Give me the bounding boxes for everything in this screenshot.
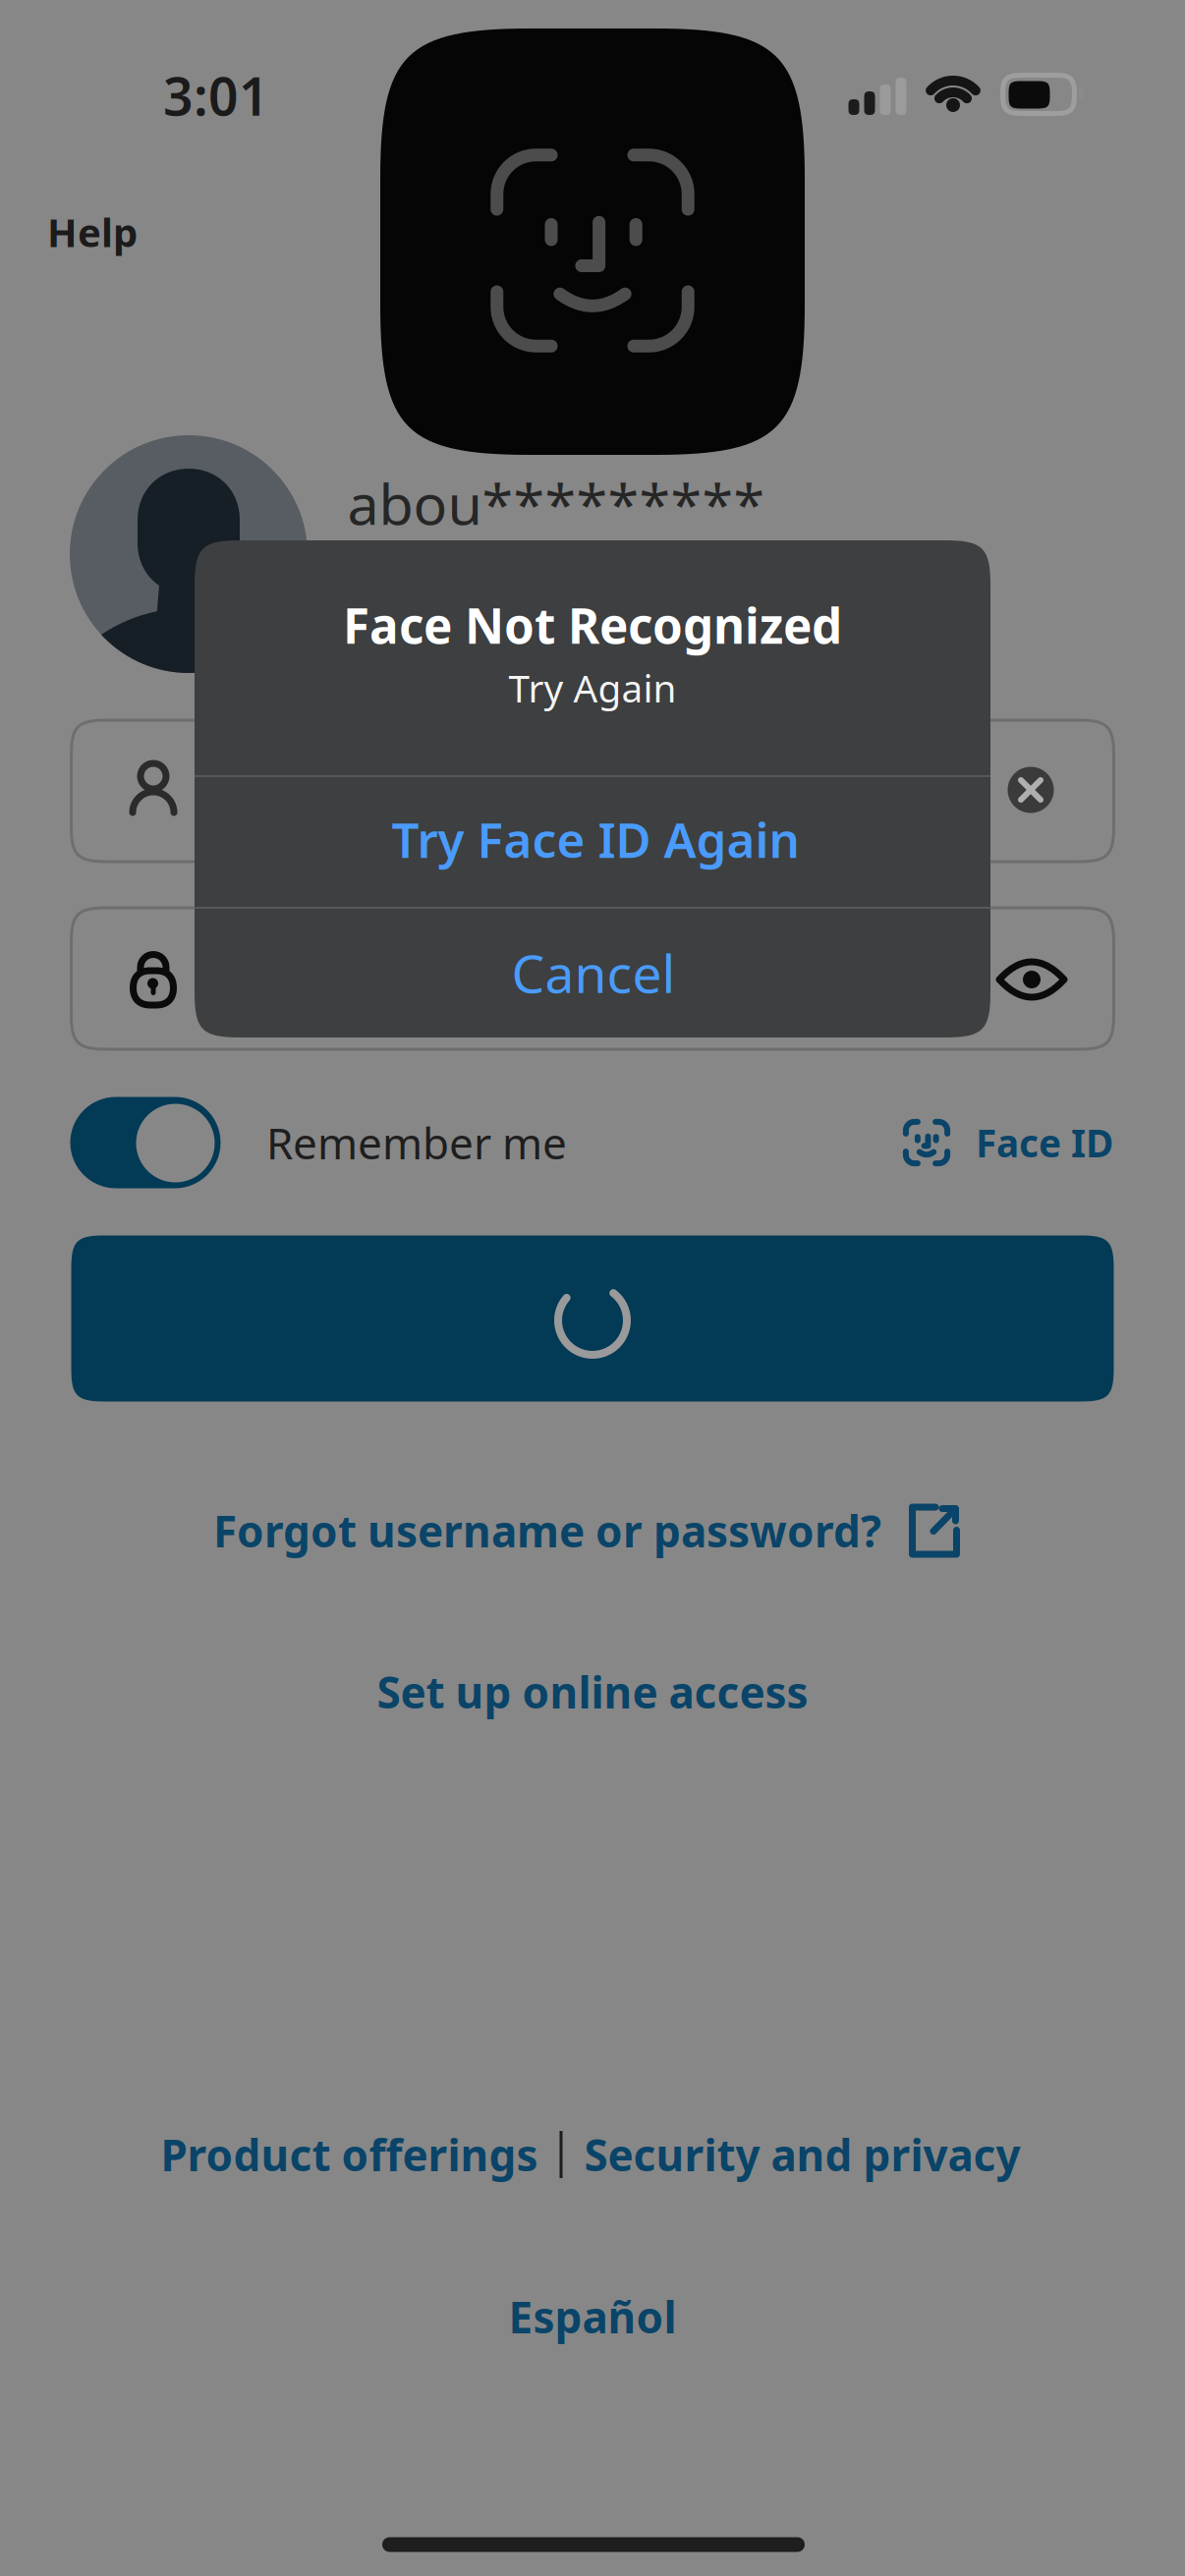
button[interactable]: Help <box>31 194 153 270</box>
staticText: Product offerings <box>161 2126 538 2183</box>
button[interactable]: Signing in <box>71 1235 1114 1401</box>
staticText: Security and privacy <box>584 2126 1020 2183</box>
staticText: Cancel <box>511 938 676 1007</box>
button[interactable]: Try Face ID Again <box>195 777 990 907</box>
staticText: Try Again <box>508 662 677 713</box>
staticText: Remember me <box>266 1114 567 1171</box>
staticText: Help <box>47 206 138 258</box>
staticText: Forgot username or password? <box>213 1502 881 1559</box>
button[interactable]: Cancel <box>195 909 990 1037</box>
button[interactable]: Español <box>499 2278 686 2355</box>
staticText: Español <box>508 2288 677 2345</box>
staticText: Set up online access <box>377 1663 808 1720</box>
staticText: abou********* <box>347 466 765 540</box>
button[interactable]: Show password <box>981 940 1083 1019</box>
button[interactable]: Security and privacy <box>584 2118 1020 2191</box>
staticText: 3:01 <box>163 61 269 130</box>
button[interactable]: Clear username <box>992 751 1070 829</box>
staticText: Face Not Recognized <box>343 593 842 657</box>
button[interactable]: Remember me <box>70 1097 221 1188</box>
button[interactable]: Product offerings <box>161 2118 538 2191</box>
button[interactable]: Face ID <box>903 1117 1113 1168</box>
staticText: Try Face ID Again <box>392 807 799 871</box>
button[interactable]: Set up online access <box>367 1653 818 1730</box>
staticText: Face ID <box>976 1117 1113 1168</box>
button[interactable]: Forgot username or password? <box>205 1494 968 1567</box>
